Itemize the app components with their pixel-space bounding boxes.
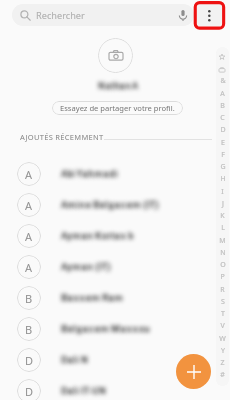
staticText: A [25,167,33,182]
staticText: # [220,370,225,380]
staticText: C [220,113,225,123]
staticText: A [25,260,33,275]
staticText: A [25,198,33,213]
button[interactable]: D [0,375,230,400]
staticText: I [221,187,224,197]
staticText: T [221,309,225,319]
button[interactable]: Alphabet index [216,47,229,386]
staticText: W [219,334,226,344]
staticText: A [220,89,225,99]
staticText: K [220,211,225,221]
staticText: A [25,229,33,244]
staticText: P [220,272,225,282]
staticText: Rechercher [36,9,85,22]
staticText: D [220,125,226,135]
staticText: R [220,285,225,295]
staticText: N [220,248,226,258]
button[interactable]: A [0,251,230,282]
button[interactable]: D [0,344,230,375]
button[interactable]: Add contact [176,354,211,389]
staticText: Z [220,358,225,368]
button[interactable]: Add profile photo [98,38,133,73]
button[interactable]: A [0,158,230,189]
staticText: V [220,321,225,331]
button[interactable]: Voice search [175,7,191,23]
button[interactable]: Rechercher [12,4,194,26]
staticText: J [222,199,224,209]
staticText: E [221,138,225,148]
staticText: & [220,76,226,86]
staticText: B [220,101,225,111]
button[interactable]: More options [192,0,226,31]
button[interactable]: B [0,282,230,313]
staticText: M [219,236,226,246]
button[interactable]: B [0,313,230,344]
staticText: G [220,162,226,172]
staticText: F [221,150,225,160]
button[interactable]: A [0,189,230,220]
button[interactable]: Essayez de partager votre profil. [52,101,183,115]
button[interactable]: A [0,220,230,251]
staticText: D [25,353,34,368]
staticText: Essayez de partager votre profil. [60,103,175,113]
staticText: AJOUTÉS RÉCEMMENT [20,132,104,142]
staticText: O [220,260,226,270]
staticText: Y [221,346,225,356]
staticText: S [221,297,225,307]
staticText: D [25,384,34,399]
staticText: L [221,223,225,233]
staticText: B [25,322,33,337]
staticText: B [25,291,33,306]
staticText: H [220,174,226,184]
